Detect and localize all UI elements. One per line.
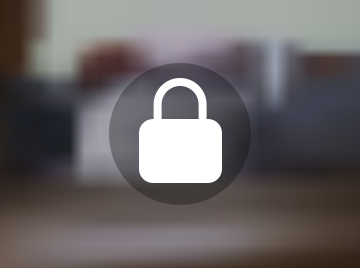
button[interactable]: Locked — tap to unlock [0,0,360,268]
